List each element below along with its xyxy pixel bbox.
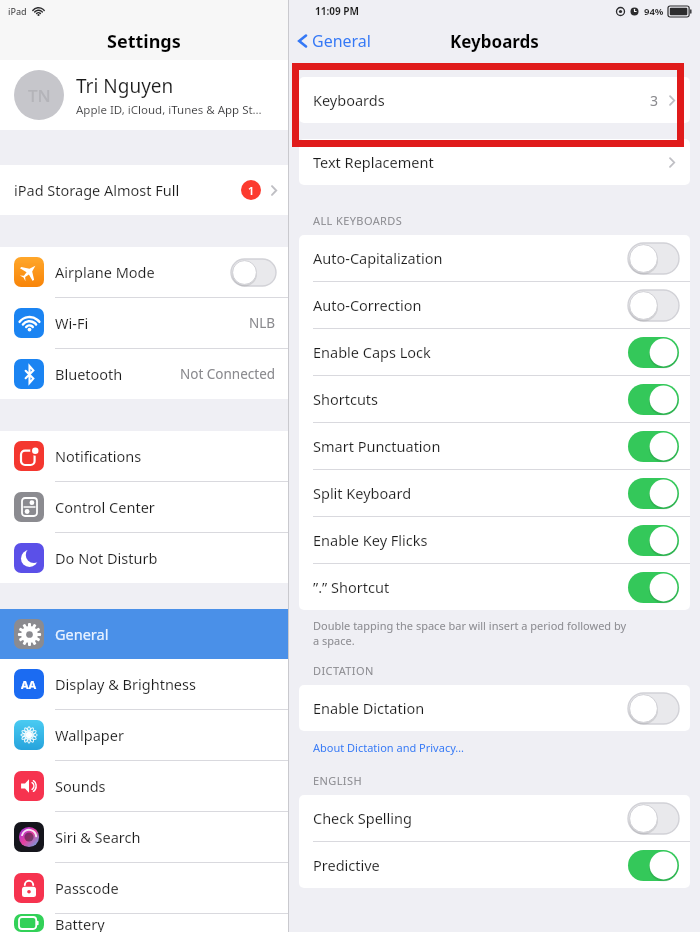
button[interactable]: Auto-Capitalization [299, 235, 690, 281]
button[interactable]: ”.” Shortcut on [628, 572, 679, 603]
staticText: iPad [8, 5, 27, 17]
staticText: DICTATION [313, 663, 374, 678]
button[interactable]: Bluetooth [0, 349, 288, 399]
staticText: Not Connected [180, 365, 276, 383]
button[interactable]: Split Keyboard [299, 470, 690, 516]
staticText: Keyboards [313, 90, 650, 110]
staticText: 3 [650, 91, 659, 110]
staticText: Airplane Mode [55, 262, 231, 282]
staticText: Settings [107, 29, 181, 54]
staticText: 1 [248, 183, 255, 198]
staticText: ENGLISH [313, 773, 362, 788]
button[interactable]: Split Keyboard on [628, 478, 679, 509]
staticText: ”.” Shortcut [313, 577, 628, 597]
staticText: NLB [249, 314, 276, 332]
button[interactable]: Shortcuts on [628, 384, 679, 415]
button[interactable]: Airplane Mode off [231, 259, 276, 286]
button[interactable]: General [289, 30, 379, 52]
button[interactable]: Airplane Mode [0, 247, 288, 297]
staticText: ALL KEYBOARDS [313, 213, 403, 228]
button[interactable]: Smart Punctuation [299, 423, 690, 469]
button[interactable]: Auto-Correction [299, 282, 690, 328]
button[interactable]: Notifications [0, 431, 288, 481]
staticText: Auto-Capitalization [313, 248, 628, 268]
staticText: Wallpaper [55, 725, 276, 745]
button[interactable]: Check Spelling [299, 795, 690, 841]
button[interactable]: Wi-Fi [0, 298, 288, 348]
staticText: Do Not Disturb [55, 548, 276, 568]
button[interactable]: General [0, 609, 288, 659]
staticText: Control Center [55, 497, 276, 517]
button[interactable]: TN [0, 60, 288, 130]
button[interactable]: Siri & Search [0, 812, 288, 862]
staticText: Shortcuts [313, 389, 628, 409]
button[interactable]: Enable Key Flicks [299, 517, 690, 563]
staticText: Battery [55, 914, 276, 932]
staticText: Bluetooth [55, 364, 180, 384]
staticText: Tri Nguyen [76, 73, 174, 99]
staticText: Wi-Fi [55, 313, 249, 333]
staticText: Apple ID, iCloud, iTunes & App St… [76, 102, 262, 118]
button[interactable]: Enable Caps Lock [299, 329, 690, 375]
staticText: TN [28, 84, 51, 107]
button[interactable]: Shortcuts [299, 376, 690, 422]
staticText: General [55, 624, 276, 644]
button[interactable]: Enable Dictation off [628, 693, 679, 724]
button[interactable]: Sounds [0, 761, 288, 811]
staticText: Sounds [55, 776, 276, 796]
staticText: Enable Dictation [313, 698, 628, 718]
staticText: About Dictation and Privacy… [313, 740, 465, 755]
button[interactable]: Auto-Capitalization off [628, 243, 679, 274]
staticText: Enable Key Flicks [313, 530, 628, 550]
button[interactable]: Wallpaper [0, 710, 288, 760]
button[interactable]: Smart Punctuation on [628, 431, 679, 462]
button[interactable]: Predictive on [628, 850, 679, 881]
button[interactable]: Predictive [299, 842, 690, 888]
staticText: 11:09 PM [315, 4, 359, 18]
button[interactable]: Battery [0, 914, 288, 932]
staticText: Check Spelling [313, 808, 628, 828]
staticText: Predictive [313, 855, 628, 875]
button[interactable]: AA [0, 659, 288, 709]
button[interactable]: iPad Storage Almost Full [0, 165, 288, 215]
staticText: Notifications [55, 446, 276, 466]
staticText: General [312, 30, 371, 52]
staticText: iPad Storage Almost Full [14, 180, 241, 200]
staticText: Auto-Correction [313, 295, 628, 315]
button[interactable]: About Dictation and Privacy… [313, 740, 465, 755]
button[interactable]: Enable Key Flicks on [628, 525, 679, 556]
button[interactable]: Enable Caps Lock on [628, 337, 679, 368]
button[interactable]: ”.” Shortcut [299, 564, 690, 610]
staticText: Smart Punctuation [313, 436, 628, 456]
button[interactable]: Check Spelling off [628, 803, 679, 834]
staticText: Display & Brightness [55, 674, 276, 694]
staticText: Keyboards [450, 30, 539, 53]
staticText: Passcode [55, 878, 276, 898]
button[interactable]: Do Not Disturb [0, 533, 288, 583]
button[interactable]: Text Replacement [299, 139, 690, 185]
button[interactable]: Keyboards [299, 77, 690, 123]
staticText: Split Keyboard [313, 483, 628, 503]
staticText: 94% [644, 5, 664, 18]
staticText: Double tapping the space bar will insert… [313, 618, 627, 648]
button[interactable]: Auto-Correction off [628, 290, 679, 321]
staticText: Text Replacement [313, 152, 668, 172]
staticText: Enable Caps Lock [313, 342, 628, 362]
staticText: AA [21, 677, 37, 692]
staticText: Siri & Search [55, 827, 276, 847]
button[interactable]: Enable Dictation [299, 685, 690, 731]
button[interactable]: Control Center [0, 482, 288, 532]
button[interactable]: Passcode [0, 863, 288, 913]
